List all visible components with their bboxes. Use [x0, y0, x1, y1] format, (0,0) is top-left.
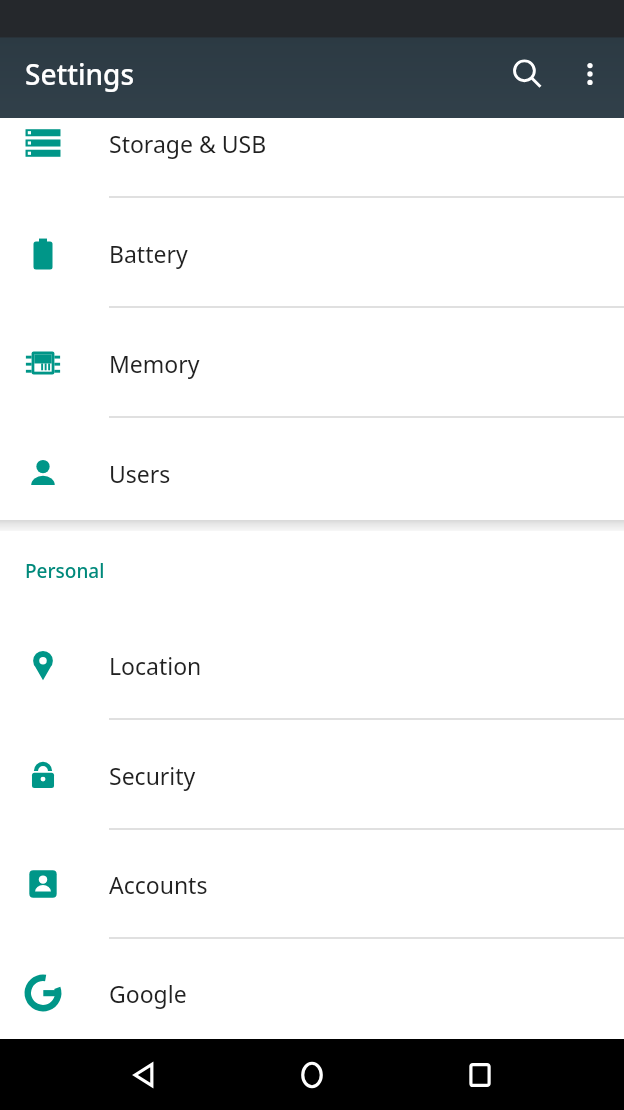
staticText: Accounts [109, 869, 208, 900]
button[interactable]: Back [108, 1039, 180, 1110]
button[interactable]: Security [0, 720, 624, 830]
staticText: Battery [109, 238, 188, 269]
button[interactable]: Accounts [0, 829, 624, 939]
staticText: Personal [25, 558, 105, 584]
button[interactable]: Search [492, 39, 562, 109]
button[interactable]: Battery [0, 198, 624, 308]
button[interactable]: Recent apps [444, 1039, 516, 1110]
button[interactable]: Memory [0, 308, 624, 418]
staticText: Google [109, 978, 187, 1009]
staticText: Users [109, 458, 171, 489]
button[interactable]: Storage & USB [0, 88, 624, 198]
staticText: Location [109, 650, 202, 681]
button[interactable]: Users [0, 418, 624, 528]
staticText: Storage & USB [109, 128, 267, 159]
button[interactable]: Home [276, 1039, 348, 1110]
button[interactable]: Google [0, 938, 624, 1048]
button[interactable]: Location [0, 610, 624, 720]
staticText: Settings [25, 55, 135, 93]
button[interactable]: More options [557, 41, 623, 107]
staticText: Security [109, 760, 196, 791]
staticText: Memory [109, 348, 200, 379]
